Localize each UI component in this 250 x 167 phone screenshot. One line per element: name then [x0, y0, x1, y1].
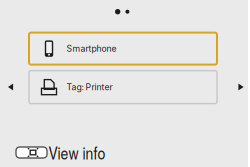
- button[interactable]: Next screen: [230, 76, 250, 98]
- button[interactable]: Previous screen: [0, 76, 21, 98]
- button[interactable]: Smartphone: [29, 33, 217, 65]
- staticText: View info: [48, 141, 105, 164]
- staticText: Tag: Printer: [66, 82, 112, 92]
- staticText: Smartphone: [66, 43, 116, 54]
- button[interactable]: Tag: Printer: [29, 71, 217, 104]
